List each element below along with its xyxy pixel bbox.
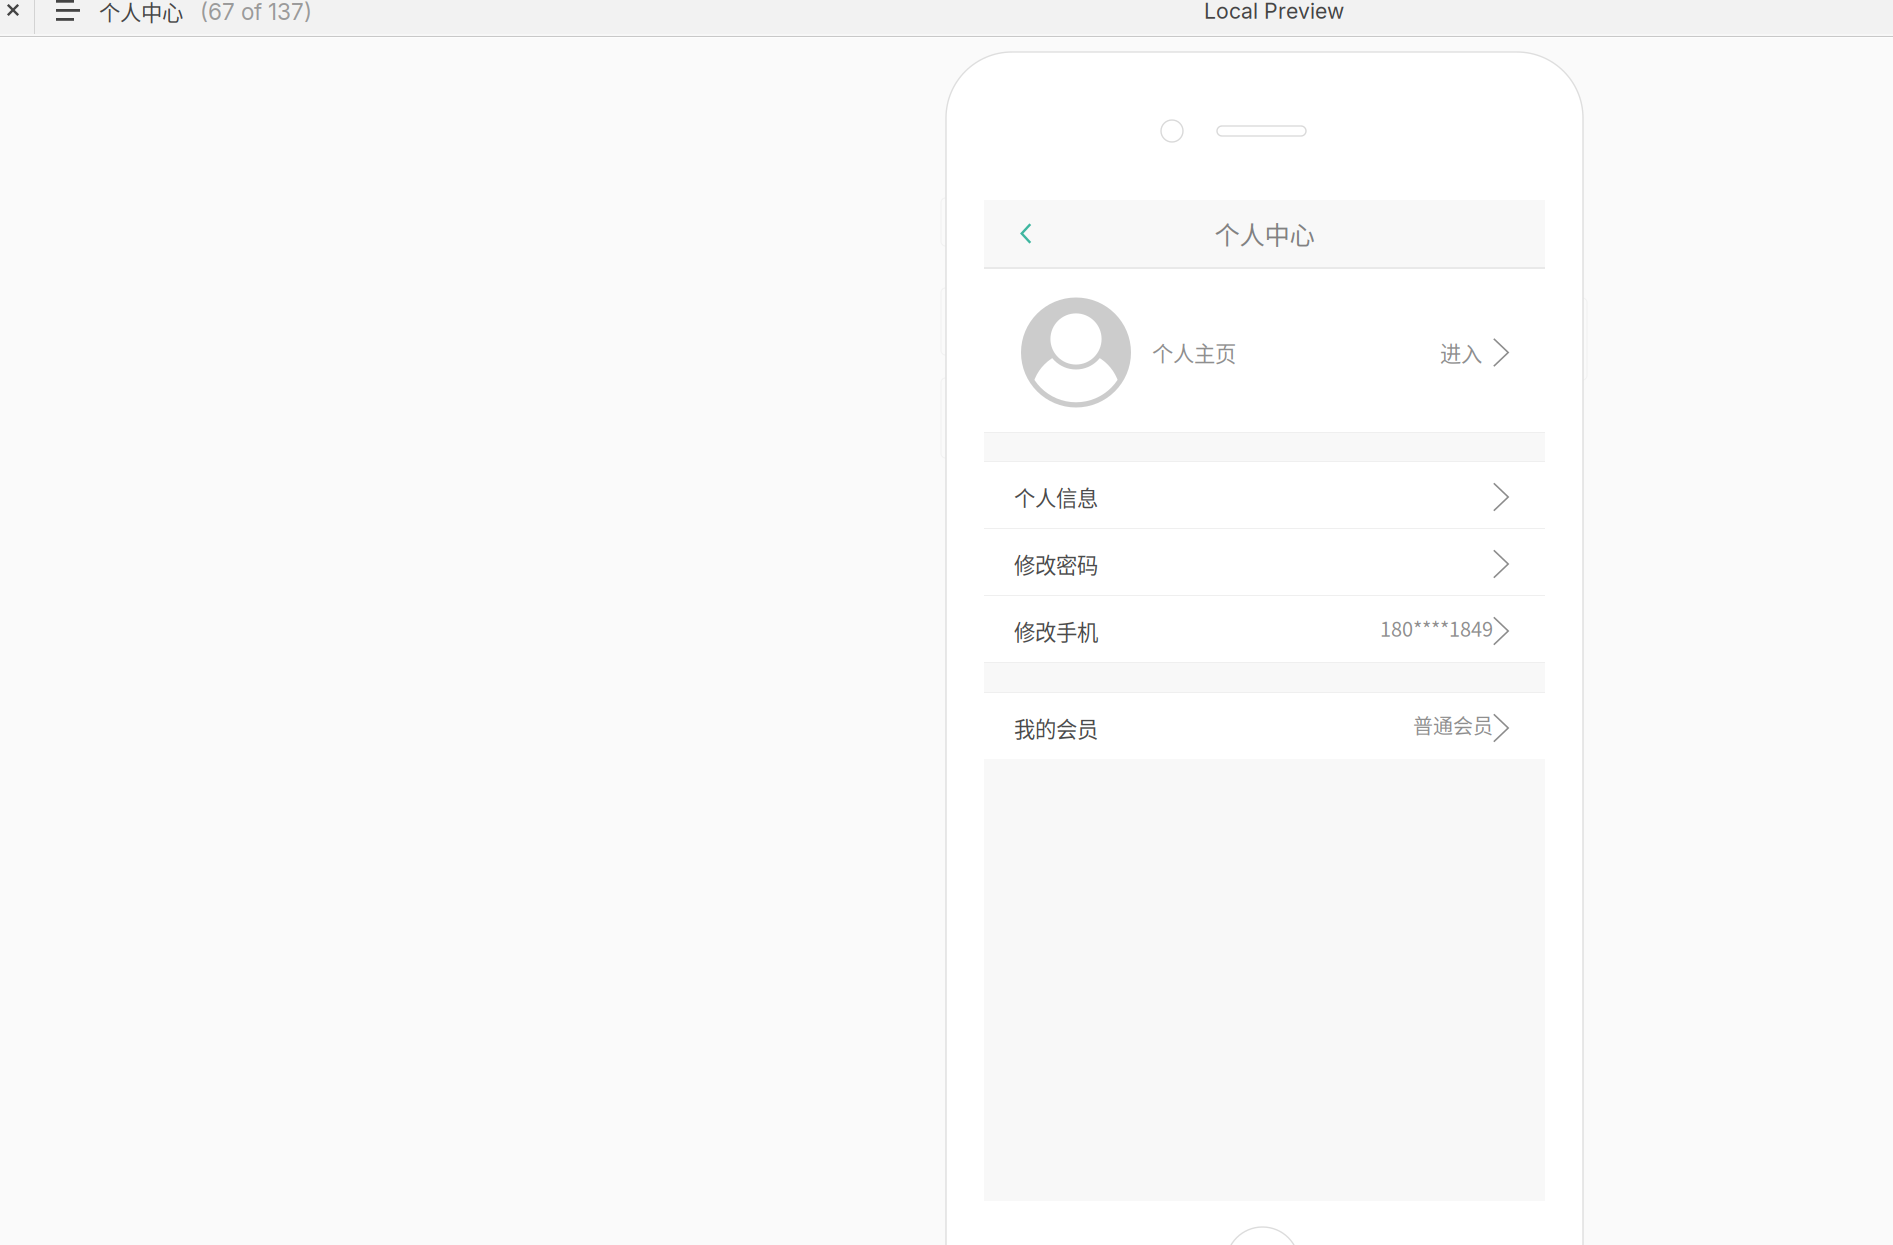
button[interactable]: 个人主页 (984, 269, 1545, 432)
button[interactable]: Back (984, 200, 1068, 267)
staticText: 个人信息 (1014, 482, 1098, 512)
staticText: 修改密码 (1014, 549, 1098, 579)
staticText: 普通会员 (1413, 710, 1493, 739)
button[interactable]: 个人信息 (984, 462, 1545, 528)
staticText: 修改手机 (1014, 616, 1098, 646)
button[interactable]: 修改手机 (984, 596, 1545, 662)
staticText: Local Preview (1204, 0, 1344, 24)
staticText: 个人主页 (1152, 337, 1236, 368)
staticText: 180****1849 (1380, 613, 1493, 642)
staticText: 个人中心 (99, 0, 183, 27)
button[interactable]: Menu (56, 0, 80, 34)
staticText: 进入 (1440, 337, 1482, 368)
button[interactable]: Close (0, 0, 26, 27)
staticText: 个人中心 (1214, 215, 1314, 252)
button[interactable]: 修改密码 (984, 529, 1545, 595)
staticText: (67 of 137) (200, 0, 312, 25)
button[interactable]: 我的会员 (984, 693, 1545, 759)
staticText: 我的会员 (1014, 713, 1098, 743)
